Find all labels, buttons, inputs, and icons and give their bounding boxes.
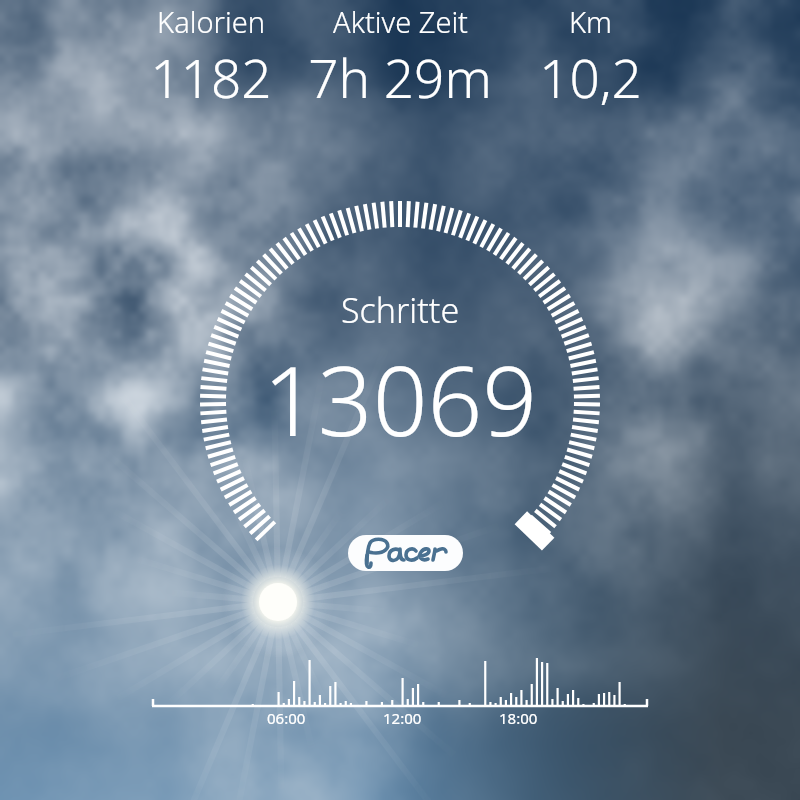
button[interactable]: Kalorien — [91, 2, 331, 113]
staticText: 18:00 — [499, 708, 538, 728]
staticText: 13069 — [263, 333, 538, 464]
staticText: 06:00 — [267, 708, 306, 728]
button[interactable]: Aktive Zeit — [280, 2, 520, 113]
staticText: Aktive Zeit — [333, 2, 468, 41]
button[interactable]: Pacer — [348, 535, 463, 571]
staticText: Km — [569, 2, 612, 41]
staticText: Schritte — [341, 287, 460, 333]
staticText: 12:00 — [383, 708, 422, 728]
staticText: 1182 — [150, 41, 272, 113]
staticText: 7h 29m — [308, 41, 492, 113]
staticText: Kalorien — [157, 2, 265, 41]
staticText: 10,2 — [539, 41, 642, 113]
button[interactable]: Km — [470, 2, 710, 113]
